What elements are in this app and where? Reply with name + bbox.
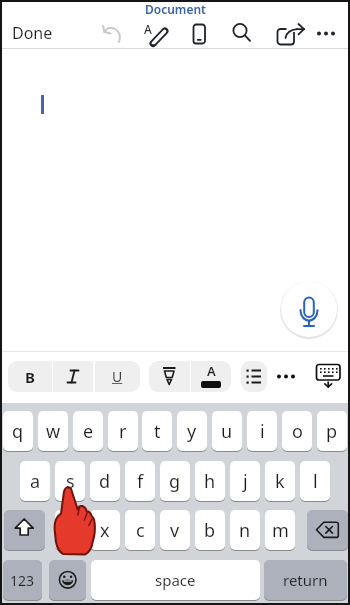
staticText: space: [155, 570, 196, 590]
button[interactable]: f: [125, 461, 155, 501]
staticText: 123: [10, 571, 35, 590]
button[interactable]: p: [317, 411, 347, 451]
button[interactable]: e: [73, 411, 103, 451]
button[interactable]: space: [91, 560, 260, 600]
button[interactable]: m: [265, 510, 295, 550]
button[interactable]: [281, 281, 337, 337]
button[interactable]: y: [177, 411, 207, 451]
staticText: h: [204, 469, 216, 494]
staticText: e: [83, 419, 94, 444]
button[interactable]: u: [212, 411, 242, 451]
button[interactable]: U: [95, 361, 140, 392]
button[interactable]: t: [142, 411, 172, 451]
staticText: u: [221, 419, 233, 444]
staticText: A: [207, 362, 216, 380]
button[interactable]: z: [55, 510, 85, 550]
button[interactable]: l: [300, 461, 330, 501]
staticText: c: [136, 518, 145, 543]
button[interactable]: 123: [3, 560, 42, 600]
button[interactable]: B: [8, 361, 52, 392]
button[interactable]: [149, 361, 190, 392]
staticText: t: [154, 419, 161, 444]
button[interactable]: [307, 510, 348, 550]
staticText: Done: [12, 22, 53, 44]
staticText: m: [272, 518, 289, 543]
staticText: k: [275, 469, 285, 494]
staticText: b: [204, 518, 216, 543]
button[interactable]: v: [160, 510, 190, 550]
staticText: A: [144, 21, 152, 37]
button[interactable]: [182, 20, 216, 48]
button[interactable]: b: [195, 510, 225, 550]
staticText: o: [292, 419, 303, 444]
button[interactable]: j: [230, 461, 260, 501]
button[interactable]: d: [90, 461, 120, 501]
staticText: d: [99, 469, 111, 494]
button[interactable]: [95, 20, 129, 48]
staticText: s: [66, 469, 75, 494]
button[interactable]: [226, 20, 260, 48]
button[interactable]: A: [191, 361, 231, 392]
staticText: x: [100, 518, 110, 543]
button[interactable]: [270, 20, 310, 48]
button[interactable]: [313, 361, 344, 392]
staticText: a: [30, 469, 41, 494]
staticText: l: [313, 469, 318, 494]
button[interactable]: w: [38, 411, 68, 451]
button[interactable]: [241, 361, 267, 392]
button[interactable]: [138, 20, 172, 48]
button[interactable]: return: [264, 560, 347, 600]
button[interactable]: [272, 361, 304, 392]
staticText: j: [243, 469, 248, 494]
staticText: i: [260, 419, 265, 444]
staticText: w: [46, 419, 61, 444]
staticText: return: [283, 570, 328, 590]
button[interactable]: a: [20, 461, 50, 501]
button[interactable]: [53, 361, 93, 392]
staticText: g: [169, 469, 181, 494]
button[interactable]: r: [108, 411, 138, 451]
staticText: p: [326, 419, 338, 444]
staticText: y: [187, 419, 197, 444]
button[interactable]: Done: [10, 22, 60, 46]
staticText: Document: [145, 1, 206, 17]
staticText: U: [112, 367, 123, 386]
staticText: n: [239, 518, 251, 543]
button[interactable]: x: [90, 510, 120, 550]
staticText: r: [119, 419, 127, 444]
button[interactable]: h: [195, 461, 225, 501]
button[interactable]: c: [125, 510, 155, 550]
button[interactable]: n: [230, 510, 260, 550]
button[interactable]: i: [247, 411, 277, 451]
button[interactable]: [312, 20, 342, 48]
staticText: q: [12, 419, 24, 444]
button[interactable]: s: [55, 461, 85, 501]
button[interactable]: [4, 510, 45, 550]
staticText: B: [25, 367, 35, 387]
button[interactable]: k: [265, 461, 295, 501]
button[interactable]: [49, 560, 86, 600]
button[interactable]: g: [160, 461, 190, 501]
button[interactable]: q: [3, 411, 33, 451]
button[interactable]: o: [282, 411, 312, 451]
staticText: v: [170, 518, 180, 543]
staticText: f: [137, 469, 144, 494]
